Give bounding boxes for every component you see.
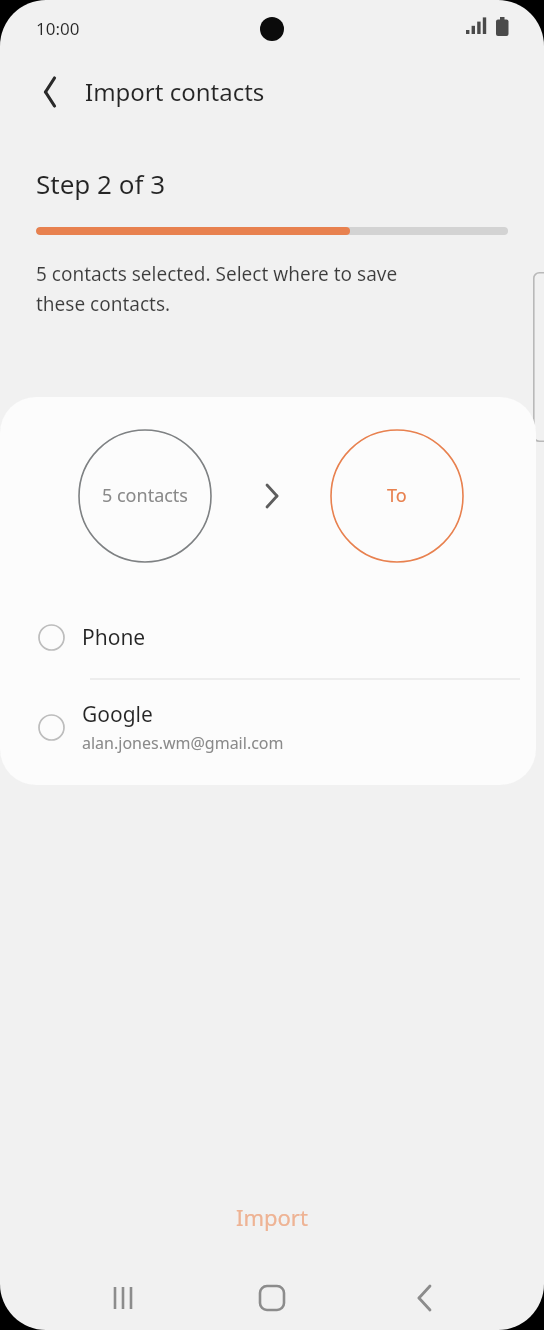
staticText: 5 contacts bbox=[102, 483, 188, 508]
button[interactable]: Back bbox=[24, 68, 72, 116]
button[interactable]: Phone bbox=[0, 597, 536, 677]
button[interactable]: Google bbox=[0, 682, 536, 772]
button[interactable]: Back bbox=[391, 1266, 457, 1330]
staticText: 5 contacts selected. Select where to sav… bbox=[36, 261, 398, 316]
staticText: 10:00 bbox=[36, 17, 80, 40]
button[interactable]: Recents bbox=[90, 1266, 156, 1330]
button[interactable]: To bbox=[331, 429, 463, 561]
button[interactable]: 5 contacts bbox=[79, 429, 211, 561]
button[interactable]: Home bbox=[239, 1266, 305, 1330]
staticText: Import contacts bbox=[85, 75, 265, 108]
staticText: alan.jones.wm@gmail.com bbox=[82, 732, 284, 754]
staticText: Step 2 of 3 bbox=[36, 166, 166, 201]
staticText: To bbox=[387, 483, 407, 508]
button[interactable]: Import bbox=[0, 1186, 544, 1248]
staticText: Google bbox=[82, 700, 153, 729]
staticText: Phone bbox=[82, 623, 146, 652]
staticText: Import bbox=[236, 1202, 308, 1232]
